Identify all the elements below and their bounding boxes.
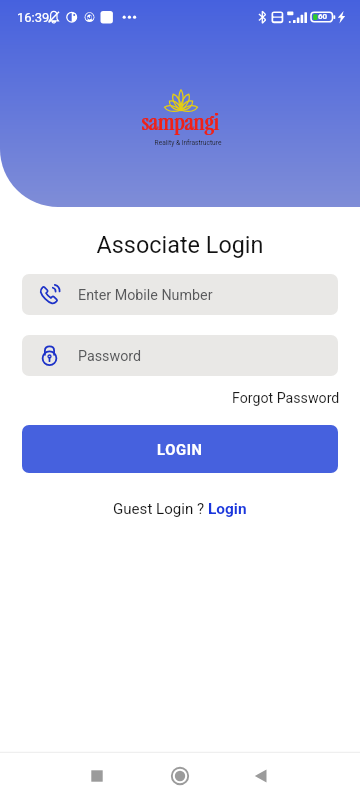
other: Password bbox=[38, 344, 61, 367]
other: Phone bbox=[38, 283, 61, 306]
button[interactable]: LOGIN bbox=[22, 425, 338, 473]
staticText: Reality & Infrastructure bbox=[88, 139, 288, 147]
button[interactable]: Recents bbox=[0, 752, 120, 800]
button[interactable]: Back bbox=[240, 752, 360, 800]
button[interactable]: Home bbox=[120, 752, 240, 800]
staticText: Login bbox=[208, 500, 247, 518]
staticText: 16:39 bbox=[17, 10, 50, 25]
staticText: Password bbox=[78, 348, 142, 365]
staticText: sampangi bbox=[80, 107, 280, 137]
button[interactable]: Phone bbox=[22, 274, 338, 315]
button[interactable]: Password bbox=[22, 335, 338, 376]
staticText: Associate Login bbox=[0, 231, 360, 258]
staticText: Enter Mobile Number bbox=[78, 287, 213, 304]
staticText: 60 bbox=[318, 12, 328, 21]
staticText: sampangi bbox=[81, 107, 281, 137]
staticText: LOGIN bbox=[157, 441, 203, 458]
button[interactable]: Forgot Password bbox=[232, 390, 340, 407]
staticText: Forgot Password bbox=[232, 390, 340, 407]
button[interactable]: Login bbox=[208, 500, 247, 518]
staticText: Guest Login ? bbox=[113, 500, 208, 518]
staticText: sampangi bbox=[80, 107, 280, 137]
